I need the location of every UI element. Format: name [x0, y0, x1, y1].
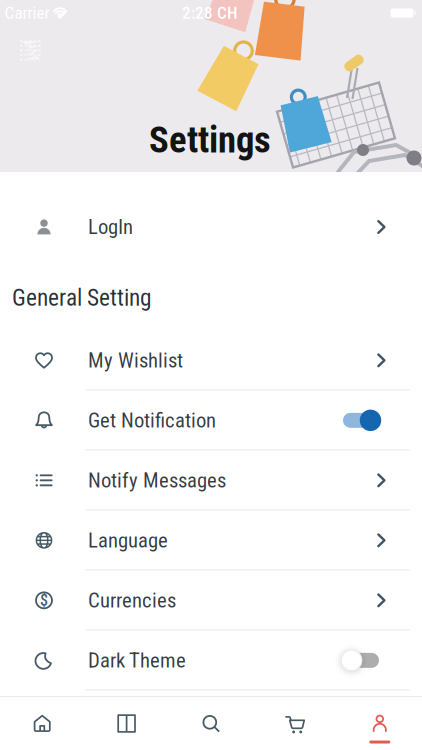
staticText: General Setting [12, 284, 152, 311]
button[interactable]: My Wishlist [0, 330, 422, 390]
button[interactable]: $ [0, 570, 422, 630]
staticText: Notify Messages [88, 468, 226, 492]
button[interactable]: Cart [253, 697, 338, 750]
button[interactable]: Dark Theme [0, 630, 422, 690]
staticText: Carrier [4, 3, 49, 23]
button[interactable]: Language [0, 510, 422, 570]
button[interactable]: Home [0, 697, 84, 750]
staticText: Settings [149, 118, 271, 161]
button[interactable]: Get Notification [0, 390, 422, 450]
button[interactable]: Profile [338, 697, 422, 750]
staticText: My Wishlist [88, 348, 183, 372]
staticText: Language [88, 528, 168, 552]
button[interactable]: Search [169, 697, 253, 750]
staticText: LogIn [88, 215, 133, 239]
staticText: Currencies [88, 588, 176, 612]
button[interactable]: Categories [84, 697, 169, 750]
staticText: Dark Theme [88, 648, 186, 672]
staticText: $ [40, 591, 48, 610]
button[interactable]: Notify Messages [0, 450, 422, 510]
button[interactable]: LogIn [0, 197, 422, 257]
staticText: 2:28 CH [182, 3, 238, 23]
staticText: Get Notification [88, 408, 216, 432]
